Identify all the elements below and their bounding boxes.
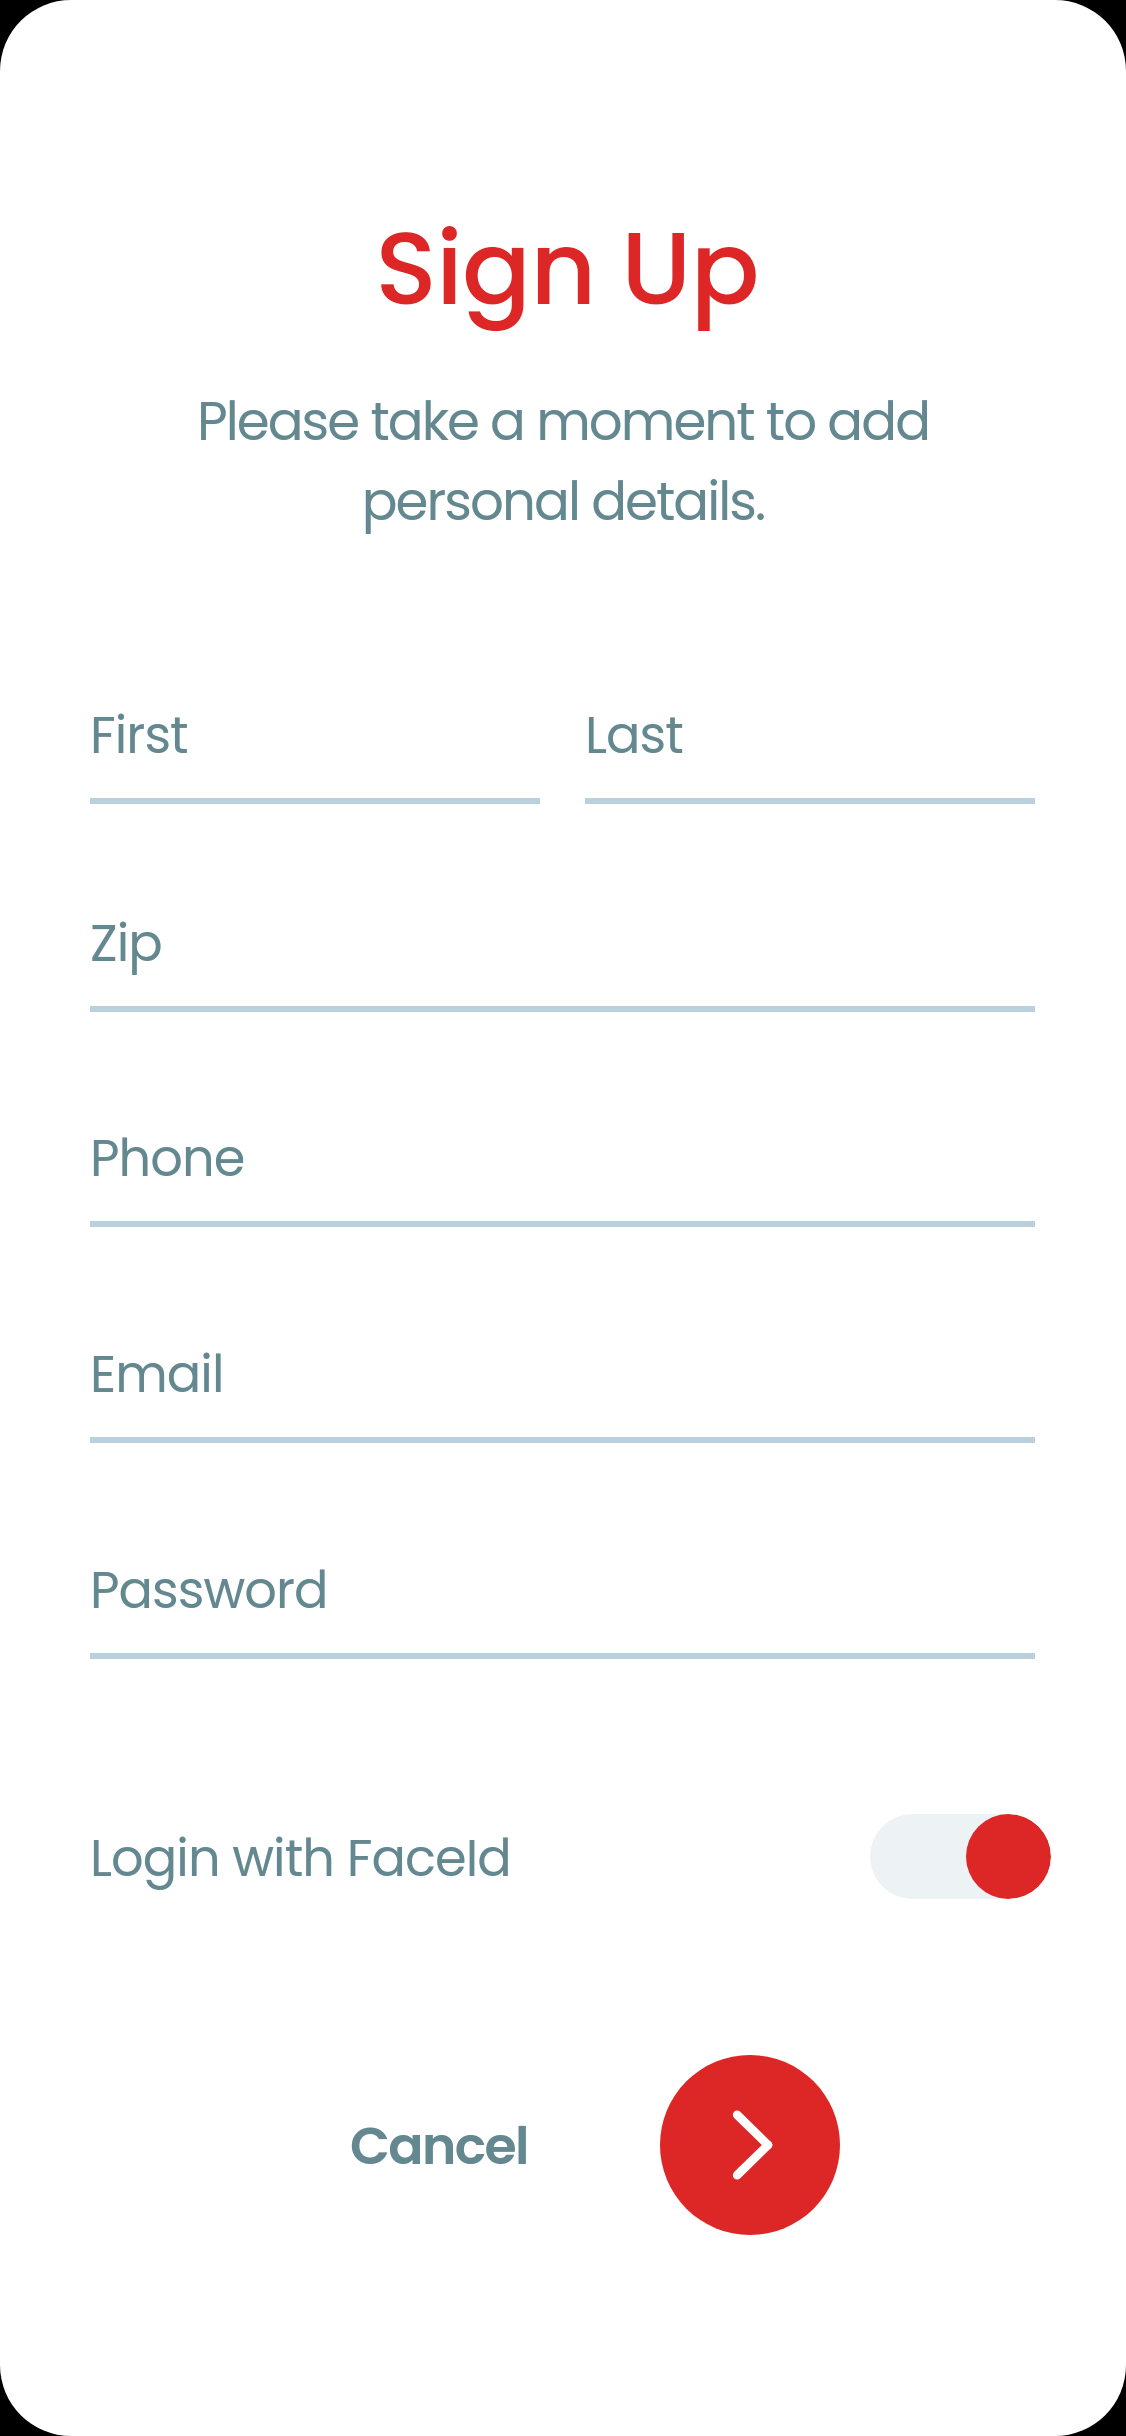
staticText: Cancel (350, 2109, 528, 2182)
button[interactable]: First (90, 699, 540, 807)
button[interactable]: Password (90, 1554, 1035, 1662)
staticText: Login with FaceId (90, 1822, 511, 1893)
button[interactable]: Next (660, 2055, 840, 2235)
staticText: Please take a moment to add personal det… (160, 384, 966, 538)
staticText: Email (90, 1338, 224, 1409)
button[interactable]: Login with FaceId toggle (870, 1814, 1051, 1899)
staticText: Password (90, 1554, 328, 1625)
button[interactable]: Last (585, 699, 1035, 807)
button[interactable]: Phone (90, 1122, 1035, 1230)
button[interactable]: Email (90, 1338, 1035, 1446)
staticText: Zip (90, 907, 162, 978)
staticText: Sign Up (375, 197, 759, 340)
button[interactable]: Zip (90, 907, 1035, 1015)
button[interactable]: Cancel (350, 2109, 528, 2182)
staticText: Last (585, 699, 683, 770)
staticText: Phone (90, 1122, 245, 1193)
staticText: First (90, 699, 188, 770)
